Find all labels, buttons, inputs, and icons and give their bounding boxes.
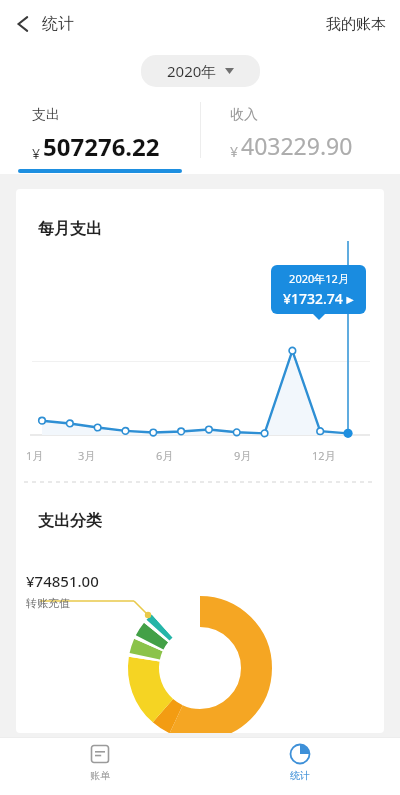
staticText: 6月 [156,448,174,463]
button[interactable]: 支出 [0,94,200,174]
staticText: ¥74851.00 [26,571,99,591]
staticText: 每月支出 [38,219,102,239]
staticText: 支出分类 [38,511,102,531]
button[interactable]: 收入 [200,94,400,174]
staticText: 2020年 [167,61,217,81]
staticText: 支出 [32,106,60,124]
button[interactable]: 2020年12月 [271,265,366,314]
staticText: 收入 [230,106,258,124]
staticText: 统计 [42,14,74,34]
staticText: 9月 [234,448,252,463]
staticText: ¥1732.74 ▸ [283,289,354,308]
button[interactable]: 我的账本 [312,7,400,42]
button[interactable]: 2020年 [141,55,260,87]
staticText: 统计 [290,769,310,782]
other: Back [16,15,30,33]
button[interactable]: 账单 [71,737,129,788]
staticText: 3月 [78,448,96,463]
staticText: ¥ [32,144,41,163]
staticText: 403229.90 [241,130,353,161]
button[interactable]: Back [0,8,86,40]
staticText: 账单 [90,769,110,782]
staticText: 507276.22 [43,130,160,163]
staticText: 2020年12月 [289,271,349,286]
staticText: 我的账本 [326,15,386,34]
staticText: ¥ [230,142,239,161]
staticText: 转账充值 [26,596,70,610]
button[interactable]: 统计 [271,737,329,788]
staticText: 1月 [26,448,44,463]
staticText: 12月 [312,448,336,463]
